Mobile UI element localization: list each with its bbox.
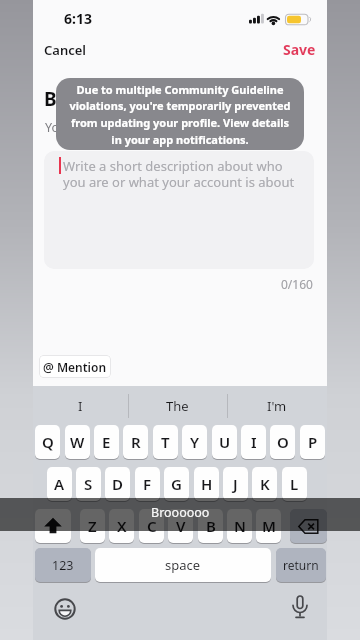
staticText: 123	[52, 557, 74, 574]
button[interactable]: K	[252, 467, 277, 501]
staticText: L	[290, 474, 299, 494]
staticText: H	[201, 474, 213, 494]
button[interactable]: R	[123, 425, 148, 459]
button[interactable]: W	[65, 425, 90, 459]
staticText: G	[171, 474, 182, 494]
button[interactable]: N	[227, 509, 252, 543]
button[interactable]: The	[128, 387, 227, 425]
button[interactable]: T	[153, 425, 178, 459]
staticText: F	[143, 474, 152, 494]
button[interactable]: S	[76, 467, 101, 501]
button[interactable]: C	[139, 509, 164, 543]
button[interactable]: Save	[270, 38, 322, 60]
staticText: S	[84, 474, 93, 494]
button[interactable]: O	[270, 425, 295, 459]
button[interactable]: P	[300, 425, 325, 459]
staticText: @ Mention	[43, 359, 107, 375]
staticText: J	[233, 474, 238, 494]
button[interactable]: I	[241, 425, 266, 459]
button[interactable]: M	[256, 509, 281, 543]
button[interactable]: B	[198, 509, 223, 543]
staticText: return	[283, 557, 319, 573]
button[interactable]: D	[105, 467, 130, 501]
staticText: Write a short description about who	[63, 157, 283, 175]
button[interactable]: space	[95, 548, 271, 582]
button[interactable]: Cancel	[40, 38, 100, 60]
staticText: Bio	[44, 86, 75, 112]
staticText: K	[260, 474, 270, 494]
button[interactable]	[283, 591, 316, 624]
button[interactable]	[35, 509, 71, 543]
button[interactable]: A	[47, 467, 72, 501]
staticText: D	[112, 474, 123, 494]
button[interactable]: E	[94, 425, 119, 459]
staticText: Due to multiple Community Guideline viol…	[69, 82, 291, 147]
staticText: 0/160	[281, 276, 313, 292]
staticText: P	[308, 432, 318, 452]
staticText: R	[131, 432, 141, 452]
button[interactable]: Y	[182, 425, 207, 459]
staticText: Cancel	[44, 41, 87, 59]
staticText: you are or what your account is about	[63, 173, 295, 191]
button[interactable]: H	[194, 467, 219, 501]
staticText: N	[234, 516, 246, 536]
staticText: Y	[190, 432, 200, 452]
staticText: C	[147, 516, 157, 536]
staticText: E	[102, 432, 111, 452]
button[interactable]: G	[164, 467, 189, 501]
button[interactable]	[44, 151, 314, 269]
staticText: Your bio	[45, 119, 94, 136]
button[interactable]: V	[168, 509, 193, 543]
staticText: O	[277, 432, 289, 452]
button[interactable]: Z	[80, 509, 105, 543]
staticText: Broooooo	[151, 504, 210, 521]
staticText: M	[262, 516, 276, 536]
button[interactable]: Q	[35, 425, 60, 459]
button[interactable]: 123	[35, 548, 91, 582]
button[interactable]	[290, 509, 327, 543]
button[interactable]	[48, 592, 81, 625]
staticText: V	[176, 516, 186, 536]
staticText: The	[166, 397, 189, 415]
staticText: I	[251, 432, 257, 452]
staticText: A	[54, 474, 65, 494]
staticText: 6:13	[64, 9, 92, 28]
staticText: I'm	[267, 397, 287, 415]
button[interactable]: L	[282, 467, 307, 501]
button[interactable]: U	[212, 425, 237, 459]
staticText: I	[78, 397, 83, 415]
staticText: T	[161, 432, 170, 452]
staticText: space	[165, 556, 201, 574]
staticText: U	[219, 432, 231, 452]
staticText: Z	[88, 516, 97, 536]
staticText: Q	[42, 432, 54, 452]
staticText: X	[117, 516, 127, 536]
button[interactable]: I'm	[227, 387, 327, 425]
button[interactable]: J	[223, 467, 248, 501]
button[interactable]: @ Mention	[39, 355, 111, 378]
staticText: B	[206, 516, 216, 536]
staticText: W	[70, 432, 85, 452]
button[interactable]: F	[135, 467, 160, 501]
button[interactable]: return	[276, 548, 326, 582]
staticText: Save	[283, 40, 316, 59]
button[interactable]: X	[109, 509, 134, 543]
button[interactable]: I	[33, 387, 128, 425]
